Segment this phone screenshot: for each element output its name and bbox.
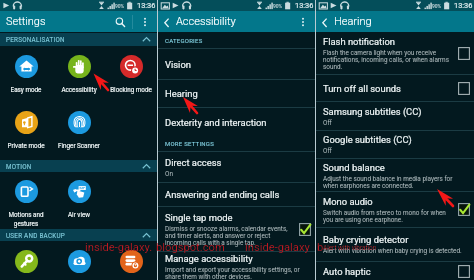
- staticText: Import and export your accessibility set…: [165, 266, 300, 280]
- staticText: Manage accessibility: [165, 253, 253, 264]
- staticText: Blocking mode: [105, 86, 157, 93]
- staticText: Samsung subtitles (CC): [323, 106, 422, 117]
- button[interactable]: Sound balance: [316, 159, 474, 191]
- button[interactable]: Manage accessibility: [158, 252, 315, 280]
- staticText: Sound balance: [323, 162, 385, 173]
- staticText: inside-galaxy.: [85, 241, 153, 254]
- button[interactable]: Direct access: [158, 152, 315, 182]
- button[interactable]: Hearing: [316, 15, 372, 28]
- staticText: MOTION: [6, 163, 32, 170]
- staticText: Flash notification: [323, 36, 395, 47]
- staticText: Alert with vibration: [323, 244, 377, 252]
- button[interactable]: Baby crying detector: [316, 228, 474, 261]
- button[interactable]: Vision: [158, 49, 315, 79]
- button[interactable]: Accessibility: [53, 55, 105, 93]
- button[interactable]: Google subtitles (CC): [316, 131, 474, 158]
- staticText: 13:36: [454, 1, 473, 10]
- button[interactable]: Toggle: [458, 265, 470, 278]
- button[interactable]: Toggle: [458, 82, 470, 95]
- button[interactable]: Auto haptic: [316, 262, 474, 280]
- staticText: Alert with vibration when baby crying is…: [323, 247, 462, 255]
- staticText: Air view: [53, 211, 105, 218]
- staticText: Private mode: [0, 142, 52, 149]
- staticText: Hearing: [165, 88, 198, 99]
- button[interactable]: Toggle: [458, 203, 470, 216]
- button[interactable]: Samsung subtitles (CC): [316, 102, 474, 130]
- button[interactable]: PERSONALISATION: [0, 33, 157, 46]
- staticText: Mono audio: [323, 196, 373, 207]
- staticText: PERSONALISATION: [6, 36, 65, 43]
- button[interactable]: MOTION: [0, 160, 157, 172]
- button[interactable]: Air view: [53, 180, 105, 218]
- button[interactable]: Mono audio: [316, 192, 474, 227]
- button[interactable]: [53, 250, 105, 273]
- staticText: Hearing: [334, 15, 372, 28]
- staticText: Accessibility: [176, 15, 236, 28]
- staticText: Dismiss or snooze alarms, calendar event…: [165, 225, 288, 246]
- staticText: Answering and ending calls: [165, 189, 280, 200]
- button[interactable]: Toggle: [458, 47, 470, 60]
- button[interactable]: Single tap mode: [158, 207, 315, 251]
- button[interactable]: Blocking mode: [105, 55, 157, 93]
- button[interactable]: Answering and ending calls: [158, 183, 315, 206]
- button[interactable]: Flash notification: [316, 32, 474, 74]
- button[interactable]: [0, 250, 52, 273]
- button[interactable]: Search: [113, 15, 127, 29]
- button[interactable]: Accessibility: [158, 15, 236, 28]
- staticText: Accessibility: [53, 86, 105, 93]
- button[interactable]: [105, 250, 157, 273]
- staticText: 13:36: [137, 1, 156, 10]
- staticText: Adjust the sound balance in media player…: [323, 175, 453, 189]
- staticText: Off: [323, 147, 332, 155]
- staticText: MORE SETTINGS: [165, 140, 215, 147]
- staticText: Flash the camera light when you receive …: [323, 49, 449, 70]
- staticText: USER AND BACKUP: [6, 232, 65, 239]
- staticText: b: [317, 241, 324, 254]
- staticText: Dexterity and interaction: [165, 117, 267, 128]
- staticText: Finger Scanner: [53, 142, 105, 149]
- staticText: 13:36: [295, 1, 314, 10]
- staticText: Motions and gestures: [0, 211, 52, 227]
- staticText: Easy mode: [0, 86, 52, 93]
- button[interactable]: Turn off all sounds: [316, 75, 474, 101]
- button[interactable]: Hearing: [158, 80, 315, 107]
- button[interactable]: Motions and gestures: [0, 180, 52, 227]
- staticText: Direct access: [165, 157, 222, 168]
- staticText: blogspot.com: [156, 241, 225, 254]
- staticText: Off: [323, 119, 332, 127]
- staticText: On: [165, 170, 173, 178]
- staticText: Turn off all sounds: [323, 83, 401, 94]
- button[interactable]: More options: [297, 16, 309, 28]
- button[interactable]: Easy mode: [0, 55, 52, 93]
- staticText: Google subtitles (CC): [323, 134, 412, 145]
- staticText: Settings: [6, 15, 46, 28]
- button[interactable]: Toggle: [299, 223, 311, 236]
- button[interactable]: Dexterity and interaction: [158, 108, 315, 136]
- staticText: Single tap mode: [165, 212, 233, 223]
- button[interactable]: Private mode: [0, 111, 52, 149]
- staticText: Vision: [165, 59, 191, 70]
- staticText: inside-galaxy: [245, 241, 310, 254]
- staticText: Baby crying detector: [323, 234, 409, 245]
- staticText: 90%: [115, 3, 125, 9]
- staticText: 90%: [432, 3, 442, 9]
- button[interactable]: Finger Scanner: [53, 111, 105, 149]
- button[interactable]: USER AND BACKUP: [0, 229, 157, 241]
- staticText: Auto haptic: [323, 266, 371, 277]
- staticText: 90%: [273, 3, 283, 9]
- button[interactable]: More options: [139, 16, 151, 28]
- staticText: Switch audio from stereo to mono for whe…: [323, 209, 446, 223]
- staticText: CATEGORIES: [165, 37, 203, 44]
